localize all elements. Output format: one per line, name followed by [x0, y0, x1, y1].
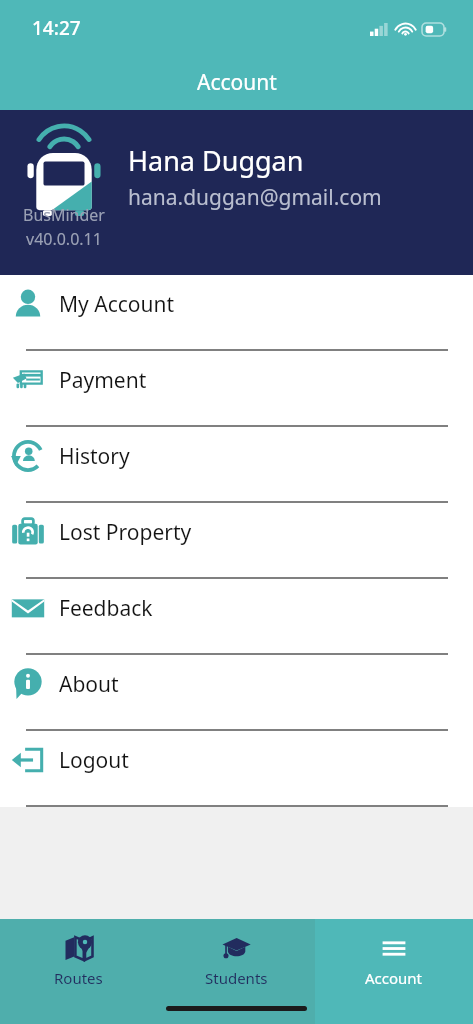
- button[interactable]: History: [0, 427, 473, 503]
- staticText: My Account: [59, 290, 175, 319]
- button[interactable]: Routes: [0, 919, 157, 991]
- button[interactable]: Logout: [0, 731, 473, 807]
- button[interactable]: Students: [157, 919, 315, 991]
- staticText: BusMinder: [23, 204, 105, 226]
- button[interactable]: Payment: [0, 351, 473, 427]
- staticText: hana.duggan@gmail.com: [128, 183, 382, 212]
- staticText: Hana Duggan: [128, 142, 304, 179]
- staticText: Lost Property: [59, 518, 192, 547]
- staticText: v40.0.0.11: [26, 228, 102, 250]
- button[interactable]: Feedback: [0, 579, 473, 655]
- staticText: Payment: [59, 366, 147, 395]
- button[interactable]: Lost Property: [0, 503, 473, 579]
- staticText: Account: [197, 68, 277, 97]
- button[interactable]: About: [0, 655, 473, 731]
- staticText: Account: [365, 968, 423, 988]
- staticText: Feedback: [59, 594, 153, 623]
- staticText: Routes: [54, 968, 103, 988]
- staticText: About: [59, 670, 119, 699]
- staticText: Logout: [59, 746, 129, 775]
- staticText: History: [59, 442, 130, 471]
- button[interactable]: My Account: [0, 275, 473, 351]
- button[interactable]: Account: [315, 919, 473, 991]
- staticText: Students: [205, 968, 268, 988]
- staticText: 14:27: [32, 15, 81, 41]
